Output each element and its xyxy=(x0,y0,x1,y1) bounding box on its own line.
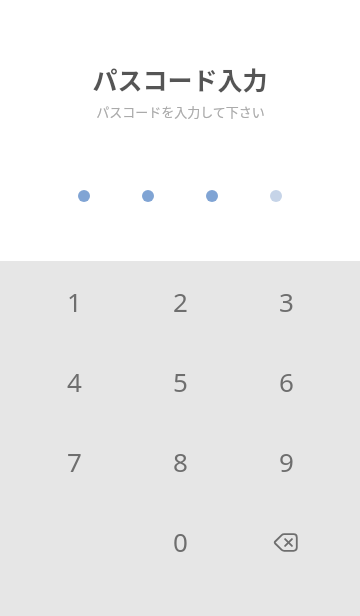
staticText: 6 xyxy=(279,364,294,399)
button[interactable]: 7 xyxy=(21,421,127,501)
staticText: 0 xyxy=(173,524,188,559)
button[interactable]: 1 xyxy=(21,261,127,341)
button[interactable]: 8 xyxy=(127,421,233,501)
staticText: パスコード入力 xyxy=(92,61,268,97)
button[interactable]: Delete xyxy=(233,501,339,581)
staticText: 9 xyxy=(279,444,294,479)
staticText: 8 xyxy=(173,444,188,479)
staticText: 4 xyxy=(67,364,82,399)
button[interactable]: 9 xyxy=(233,421,339,501)
other: Delete xyxy=(273,533,298,552)
staticText: 5 xyxy=(173,364,188,399)
staticText: 1 xyxy=(67,284,82,319)
staticText: パスコードを入力して下さい xyxy=(96,102,265,121)
staticText: 2 xyxy=(173,284,188,319)
button[interactable]: 2 xyxy=(127,261,233,341)
button[interactable]: 0 xyxy=(127,501,233,581)
staticText: 3 xyxy=(279,284,294,319)
button[interactable]: 4 xyxy=(21,341,127,421)
button[interactable]: 3 xyxy=(233,261,339,341)
staticText: 7 xyxy=(67,444,82,479)
button[interactable]: 5 xyxy=(127,341,233,421)
button[interactable]: 6 xyxy=(233,341,339,421)
